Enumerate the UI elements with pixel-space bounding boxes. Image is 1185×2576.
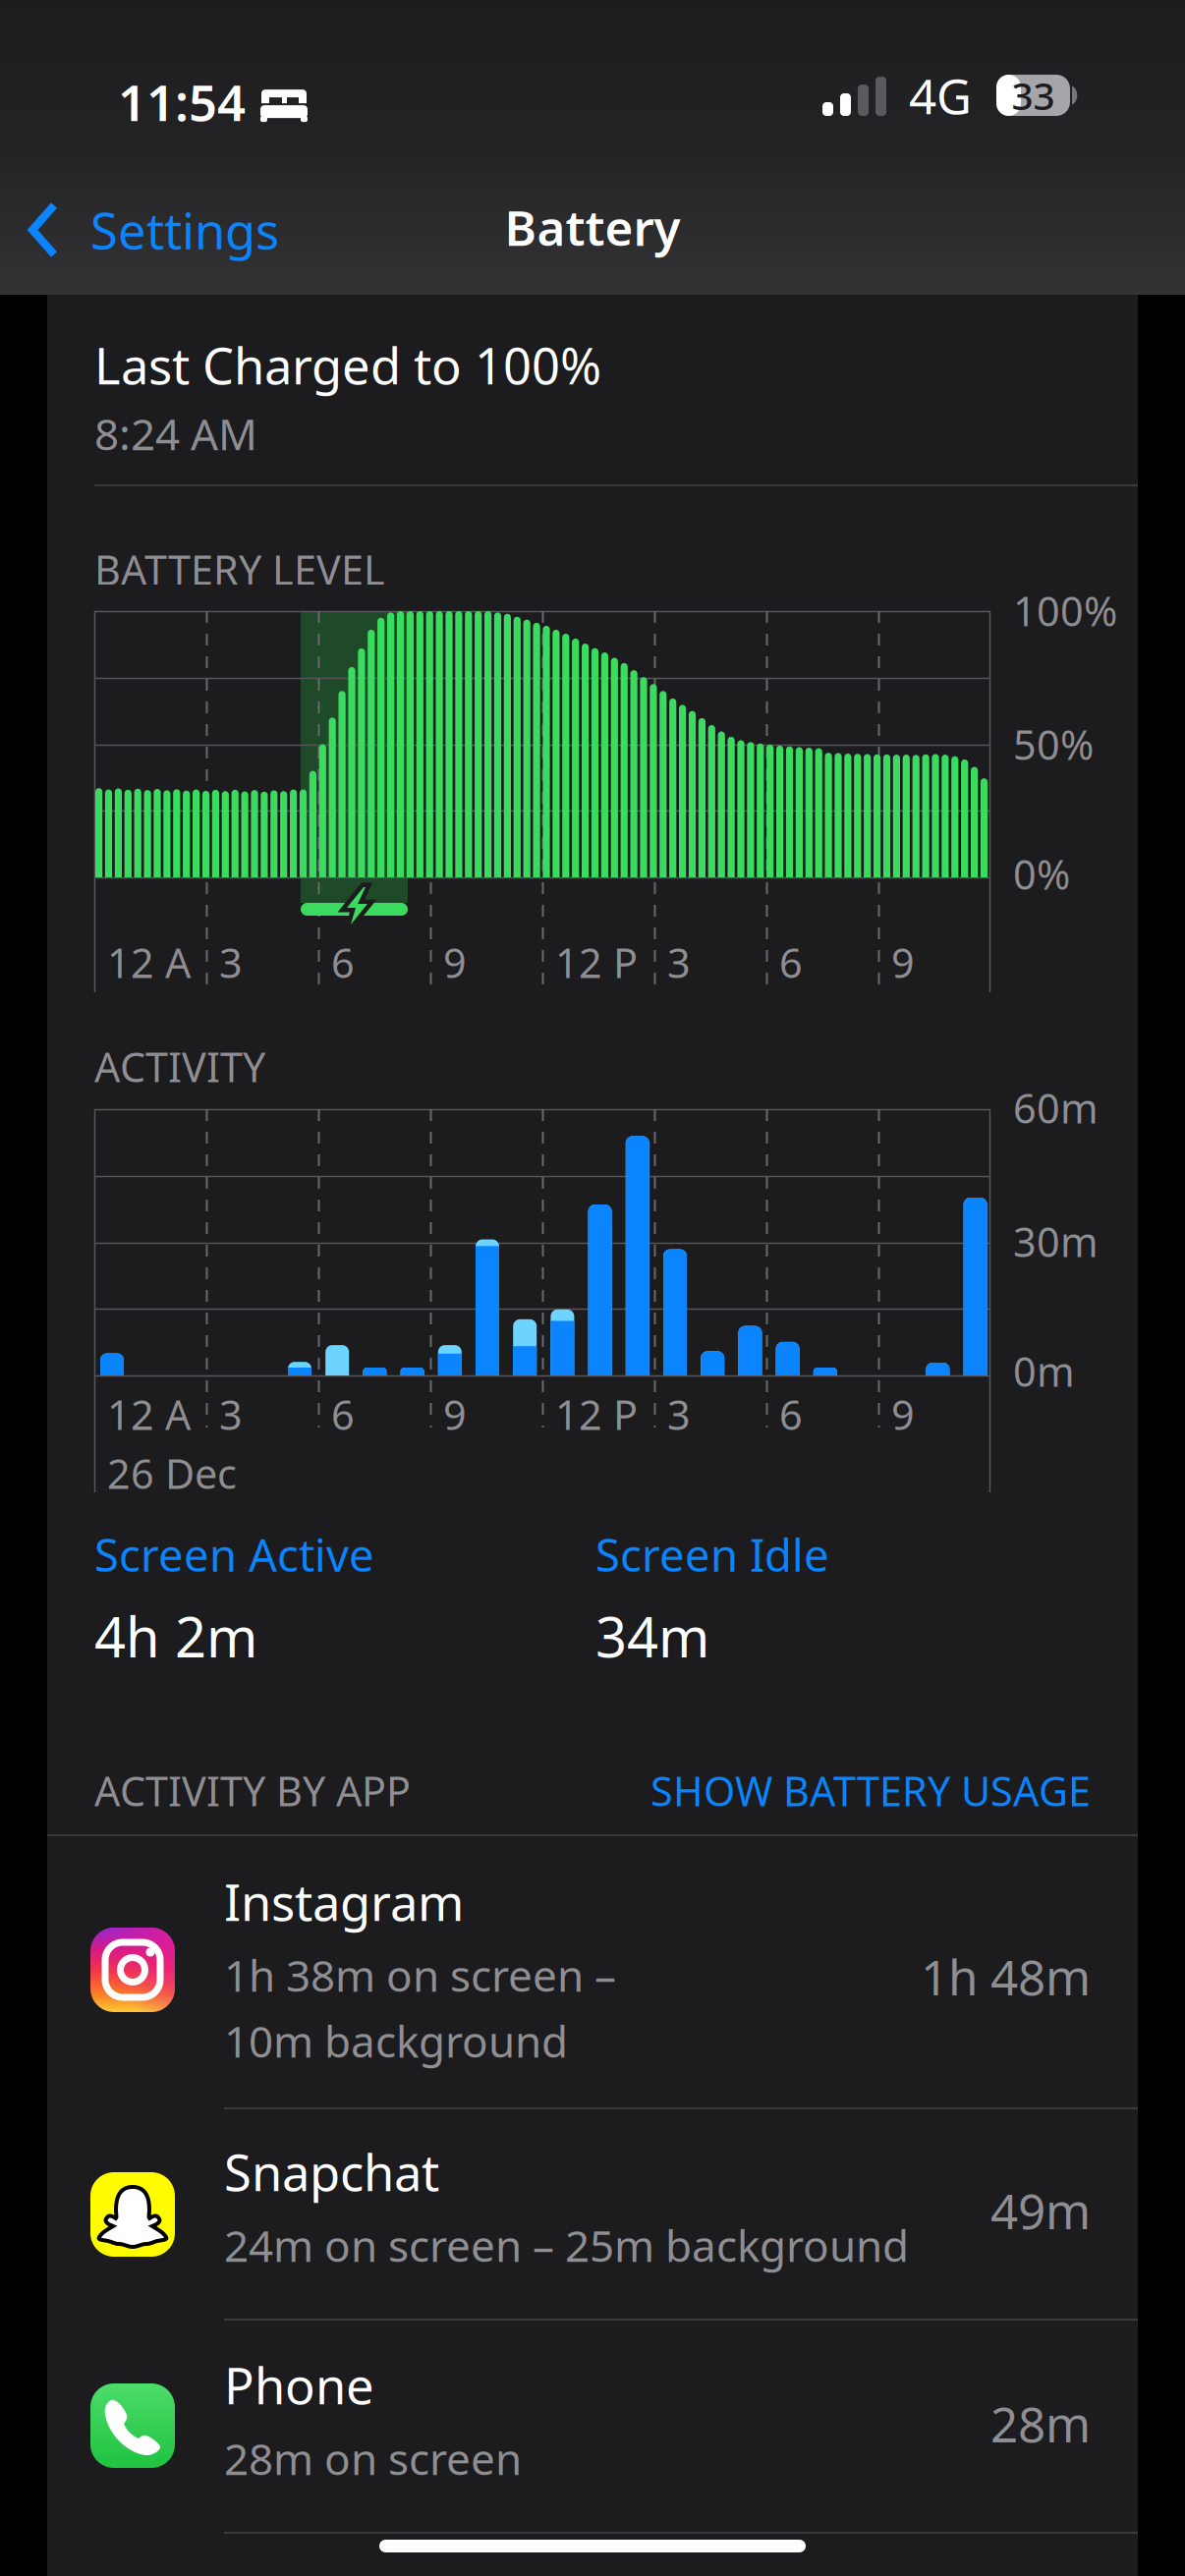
- staticText: 6: [779, 1387, 803, 1441]
- staticText: Screen Idle: [595, 1525, 829, 1584]
- staticText: 50%: [1013, 717, 1094, 771]
- staticText: 100%: [1013, 584, 1117, 638]
- staticText: 26 Dec: [107, 1446, 237, 1500]
- staticText: 28m: [990, 2391, 1091, 2456]
- staticText: 3: [667, 1387, 691, 1441]
- button[interactable]: SHOW BATTERY USAGE: [47, 1764, 1091, 1817]
- staticText: 9: [891, 1387, 915, 1441]
- staticText: 1h 48m: [921, 1944, 1091, 2009]
- staticText: 6: [779, 935, 803, 989]
- staticText: 49m: [990, 2178, 1091, 2242]
- staticText: 8:24 AM: [94, 405, 257, 462]
- staticText: 6: [331, 935, 355, 989]
- staticText: ACTIVITY: [94, 1039, 265, 1093]
- staticText: 34m: [595, 1599, 709, 1673]
- staticText: 12 P: [555, 935, 638, 989]
- staticText: 12 A: [107, 935, 191, 989]
- button[interactable]: Instagram: [47, 1836, 1138, 2109]
- staticText: Battery: [505, 195, 680, 259]
- staticText: 9: [891, 935, 915, 989]
- staticText: SHOW BATTERY USAGE: [650, 1764, 1091, 1817]
- staticText: 3: [219, 935, 243, 989]
- staticText: 6: [331, 1387, 355, 1441]
- button[interactable]: Phone: [47, 2321, 1138, 2534]
- staticText: 0%: [1013, 847, 1070, 901]
- staticText: Settings: [90, 197, 279, 263]
- staticText: 0m: [1013, 1344, 1075, 1398]
- button[interactable]: Snapchat: [47, 2109, 1138, 2321]
- staticText: 10m background: [224, 2012, 568, 2069]
- staticText: 24m on screen – 25m background: [224, 2216, 909, 2274]
- staticText: 30m: [1013, 1214, 1099, 1268]
- staticText: 33: [1012, 70, 1055, 120]
- staticText: 3: [667, 935, 691, 989]
- staticText: Snapchat: [224, 2139, 439, 2205]
- staticText: Phone: [224, 2352, 374, 2418]
- staticText: 12 A: [107, 1387, 191, 1441]
- staticText: 4h 2m: [94, 1599, 257, 1673]
- staticText: 1h 38m on screen –: [224, 1946, 616, 2004]
- staticText: 9: [443, 935, 467, 989]
- staticText: BATTERY LEVEL: [94, 542, 385, 596]
- staticText: 3: [219, 1387, 243, 1441]
- staticText: Last Charged to 100%: [94, 332, 601, 398]
- staticText: 28m on screen: [224, 2430, 522, 2487]
- staticText: 11:54: [118, 69, 246, 135]
- staticText: 9: [443, 1387, 467, 1441]
- staticText: ACTIVITY BY APP: [94, 1764, 411, 1817]
- staticText: Instagram: [224, 1869, 464, 1935]
- button[interactable]: Settings: [0, 195, 303, 265]
- staticText: 4G: [909, 63, 972, 127]
- staticText: 60m: [1013, 1081, 1099, 1135]
- staticText: 12 P: [555, 1387, 638, 1441]
- staticText: Screen Active: [94, 1525, 374, 1584]
